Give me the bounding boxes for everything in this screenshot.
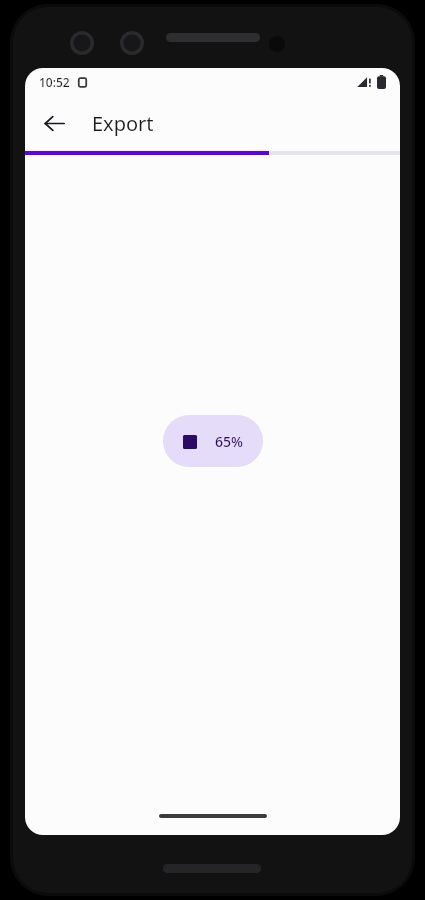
- staticText: 10:52: [39, 74, 70, 90]
- staticText: Export: [92, 110, 154, 137]
- button[interactable]: Back: [32, 101, 76, 145]
- staticText: 65%: [215, 432, 243, 451]
- button[interactable]: 65%: [163, 415, 263, 467]
